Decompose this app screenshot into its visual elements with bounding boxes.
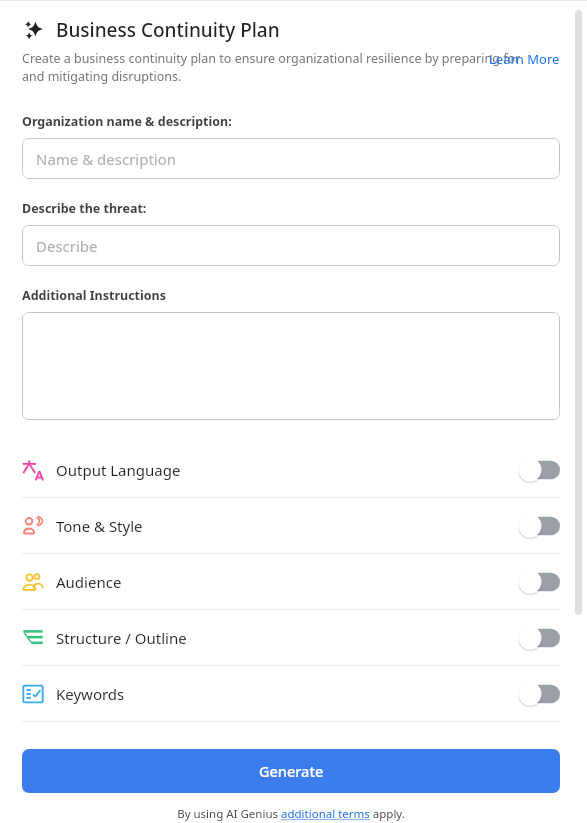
staticText: Create a business continuity plan to ens…	[22, 50, 522, 85]
staticText: By using AI Genius additional terms appl…	[177, 806, 405, 822]
staticText: Tone & Style	[56, 516, 143, 536]
staticText: Organization name & description:	[22, 113, 232, 130]
staticText: Keywords	[56, 684, 125, 704]
staticText: Additional Instructions	[22, 287, 166, 304]
other: Toggle Audience	[518, 570, 560, 594]
staticText: Describe	[36, 236, 98, 256]
button[interactable]	[22, 312, 560, 420]
other: Toggle Output Language	[518, 458, 560, 482]
staticText: Learn More	[489, 50, 560, 68]
button[interactable]: Keywords	[22, 666, 560, 721]
button[interactable]: Learn More	[489, 50, 560, 68]
button[interactable]: Audience	[22, 554, 560, 609]
other: Toggle Tone & Style	[518, 514, 560, 538]
button[interactable]: Output Language	[22, 442, 560, 497]
button[interactable]: Structure / Outline	[22, 610, 560, 665]
staticText: Structure / Outline	[56, 628, 187, 648]
button[interactable]: Generate	[22, 749, 560, 793]
other: Toggle Keywords	[518, 682, 560, 706]
staticText: Business Continuity Plan	[56, 17, 280, 43]
button[interactable]: Name & description	[22, 138, 560, 179]
button[interactable]: Tone & Style	[22, 498, 560, 553]
staticText: Output Language	[56, 460, 181, 480]
staticText: Generate	[259, 761, 324, 781]
staticText: Describe the threat:	[22, 200, 147, 217]
staticText: Audience	[56, 572, 122, 592]
button[interactable]: Describe	[22, 225, 560, 266]
other: Toggle Structure / Outline	[518, 626, 560, 650]
staticText: Name & description	[36, 149, 177, 169]
